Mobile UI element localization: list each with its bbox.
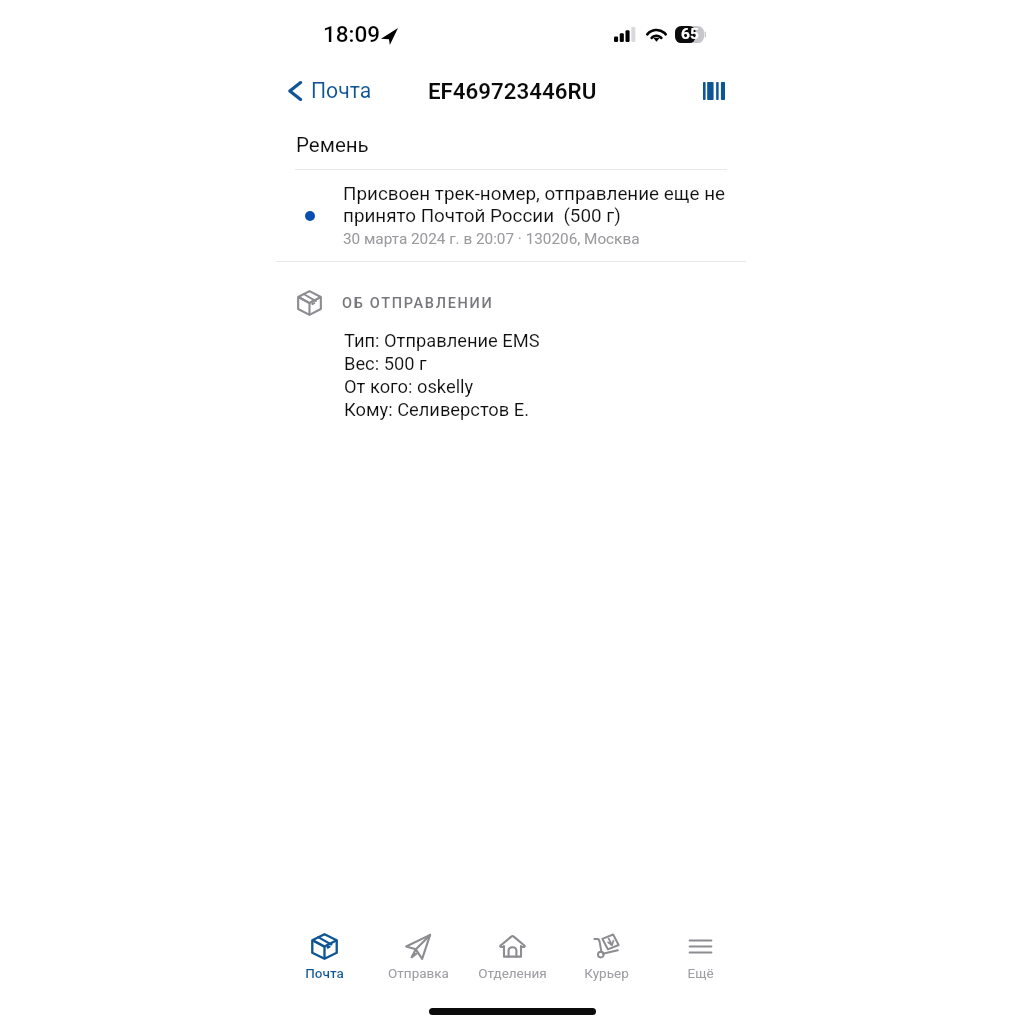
staticText: Отделения (478, 965, 547, 981)
staticText: ОБ ОТПРАВЛЕНИИ (342, 295, 494, 312)
staticText: 18:09 (323, 21, 381, 47)
button[interactable]: Почта (277, 928, 371, 981)
staticText: 30 марта 2024 г. в 20:07 · 130206, Москв… (343, 230, 640, 248)
staticText: 65 (681, 25, 699, 43)
button[interactable]: Отправка (371, 928, 465, 981)
button[interactable]: Ещё (653, 928, 747, 981)
staticText: Тип: Отправление EMS Вес: 500 г От кого:… (344, 330, 540, 421)
staticText: Почта (305, 965, 344, 981)
staticText: Отправка (388, 965, 449, 981)
button[interactable]: Отделения (465, 928, 559, 981)
button[interactable]: Show barcode (694, 71, 734, 111)
button[interactable]: Присвоен трек-номер, отправление еще не … (0, 170, 1024, 248)
button[interactable]: Почта (285, 78, 372, 103)
staticText: Ремень (296, 133, 369, 157)
staticText: EF469723446RU (428, 78, 597, 104)
staticText: Присвоен трек-номер, отправление еще не … (343, 183, 725, 227)
staticText: Почта (311, 78, 372, 103)
staticText: Ещё (687, 965, 714, 981)
button[interactable]: Курьер (559, 928, 653, 981)
staticText: Курьер (584, 965, 629, 981)
